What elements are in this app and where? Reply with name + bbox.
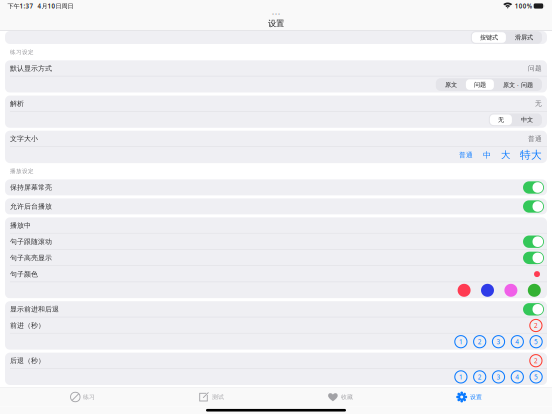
staticText: 句子跟随滚动	[10, 237, 52, 246]
staticText: 练习	[83, 393, 95, 401]
staticText: • • •	[272, 11, 280, 18]
staticText: 中	[483, 150, 491, 160]
staticText: 2	[478, 337, 482, 346]
button[interactable]: 大	[496, 149, 515, 161]
staticText: 问题	[474, 81, 486, 88]
staticText: 无	[535, 99, 542, 108]
staticText: 特大	[520, 148, 542, 162]
staticText: 1	[459, 372, 463, 381]
staticText: 播放中	[10, 221, 31, 230]
button[interactable]: 原文 · 问题	[495, 79, 541, 90]
button[interactable]: 3	[489, 334, 508, 350]
button[interactable]: 1	[451, 369, 470, 385]
button[interactable]: 测试	[166, 387, 258, 406]
staticText: 普通	[459, 151, 473, 159]
staticText: 显示前进和后退	[10, 305, 59, 314]
staticText: 原文 · 问题	[503, 80, 533, 89]
staticText: 中文	[521, 116, 533, 124]
button[interactable]: 3	[489, 369, 508, 385]
staticText: 句子颜色	[10, 270, 38, 278]
staticText: 5	[534, 372, 538, 381]
staticText: 设置	[268, 18, 284, 29]
staticText: 4月10日周日	[33, 2, 73, 10]
staticText: 设置	[470, 393, 482, 401]
button[interactable]: 句子颜色	[5, 266, 547, 282]
button[interactable]: 显示前进和后退	[5, 301, 547, 317]
staticText: 100%	[515, 2, 532, 10]
staticText: 默认显示方式	[10, 64, 52, 73]
staticText: 3	[496, 337, 500, 346]
button[interactable]: 问题	[466, 79, 494, 90]
staticText: 前进（秒）	[10, 321, 45, 330]
staticText: 测试	[212, 393, 224, 401]
button[interactable]: Red	[452, 282, 476, 298]
staticText: 2	[534, 321, 538, 330]
button[interactable]: 按键式	[472, 32, 506, 43]
button[interactable]: 原文	[437, 79, 465, 90]
button[interactable]: 练习	[37, 387, 129, 406]
button[interactable]: 句子高亮显示	[5, 250, 547, 266]
staticText: 4	[515, 372, 519, 381]
button[interactable]: 播放中	[5, 217, 547, 234]
staticText: 无	[498, 116, 504, 124]
button[interactable]: 默认显示方式	[5, 60, 547, 76]
button[interactable]: 收藏	[294, 387, 386, 406]
button[interactable]: 解析	[5, 95, 547, 112]
button[interactable]: 2	[470, 334, 489, 350]
button[interactable]: 中	[478, 150, 496, 160]
button[interactable]: 设置	[423, 387, 515, 406]
button[interactable]: Magenta	[499, 282, 523, 298]
staticText: 原文	[445, 81, 457, 88]
button[interactable]: Blue	[476, 282, 499, 298]
button[interactable]: 滑屏式	[507, 32, 541, 43]
staticText: 3	[496, 372, 500, 381]
staticText: 允许后台播放	[10, 202, 52, 211]
button[interactable]: Multitasking	[261, 12, 291, 17]
staticText: 解析	[10, 99, 24, 108]
staticText: 4	[515, 337, 519, 346]
staticText: 5	[534, 337, 538, 346]
staticText: 收藏	[341, 393, 353, 401]
button[interactable]: 前进（秒）	[5, 317, 547, 334]
button[interactable]: 1	[451, 334, 470, 350]
button[interactable]: 普通	[454, 151, 478, 159]
button[interactable]: 无	[490, 114, 512, 125]
button[interactable]: 文字大小	[5, 131, 547, 147]
staticText: 2	[534, 356, 538, 365]
button[interactable]: 后退（秒）	[5, 353, 547, 369]
button[interactable]: 2	[470, 369, 489, 385]
staticText: 练习设定	[10, 49, 34, 56]
button[interactable]: 句子跟随滚动	[5, 234, 547, 250]
button[interactable]: 特大	[515, 148, 542, 162]
button[interactable]: 5	[527, 334, 545, 350]
button[interactable]: 保持屏幕常亮	[5, 179, 547, 196]
staticText: 句子高亮显示	[10, 253, 52, 262]
staticText: 后退（秒）	[10, 356, 45, 365]
staticText: 按键式	[480, 34, 498, 41]
staticText: 2	[478, 372, 482, 381]
button[interactable]: 4	[508, 334, 527, 350]
staticText: 大	[501, 149, 510, 161]
staticText: 播放设定	[10, 168, 34, 175]
staticText: 文字大小	[10, 134, 38, 143]
staticText: 滑屏式	[515, 34, 533, 41]
staticText: 保持屏幕常亮	[10, 183, 52, 192]
button[interactable]: 4	[508, 369, 527, 385]
staticText: 普通	[528, 135, 542, 143]
staticText: 下午1:37	[7, 2, 33, 10]
staticText: 1	[459, 337, 463, 346]
button[interactable]: 允许后台播放	[5, 198, 547, 215]
staticText: 问题	[528, 64, 542, 73]
button[interactable]: 中文	[513, 114, 541, 125]
button[interactable]: Green	[523, 282, 546, 298]
button[interactable]: 5	[527, 369, 545, 385]
